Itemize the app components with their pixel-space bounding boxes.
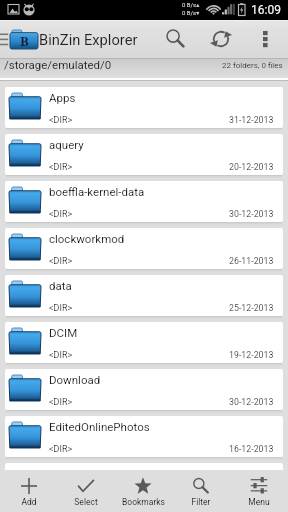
button[interactable]: Select bbox=[57, 470, 114, 512]
button[interactable]: Bookmarks bbox=[114, 470, 172, 512]
button[interactable]: Menu bbox=[230, 470, 288, 512]
staticText: <DIR> bbox=[49, 303, 73, 314]
staticText: 16-12-2013 bbox=[229, 444, 274, 454]
staticText: Bookmarks bbox=[122, 497, 165, 507]
button[interactable]: Refresh bbox=[200, 20, 241, 58]
staticText: aquery bbox=[49, 138, 84, 151]
button[interactable]: Download bbox=[5, 369, 283, 410]
staticText: 20-12-2013 bbox=[229, 162, 274, 172]
button[interactable]: DCIM bbox=[5, 322, 283, 363]
staticText: boeffla-kernel-data bbox=[49, 185, 145, 198]
button[interactable]: aquery bbox=[5, 134, 283, 175]
staticText: 31-12-2013 bbox=[229, 115, 274, 125]
button[interactable]: Menu bbox=[0, 20, 38, 58]
button[interactable]: boeffla-kernel-data bbox=[5, 181, 283, 222]
button[interactable]: EditedOnlinePhotos bbox=[5, 416, 283, 457]
staticText: 25-12-2013 bbox=[229, 303, 274, 313]
staticText: 22 folders, 0 files bbox=[222, 61, 283, 70]
staticText: Download bbox=[49, 373, 101, 386]
button[interactable]: data bbox=[5, 275, 283, 316]
staticText: Add bbox=[21, 497, 37, 507]
staticText: 0 B/s▾ bbox=[182, 9, 200, 16]
button[interactable]: More options bbox=[250, 20, 281, 58]
staticText: <DIR> bbox=[49, 350, 73, 361]
button[interactable]: Apps bbox=[5, 87, 283, 128]
staticText: B bbox=[20, 32, 29, 50]
button[interactable]: Filter bbox=[172, 470, 230, 512]
staticText: 30-12-2013 bbox=[229, 397, 274, 407]
staticText: BinZin Explorer bbox=[39, 31, 138, 48]
staticText: <DIR> bbox=[49, 397, 73, 408]
staticText: /storage/emulated/0 bbox=[4, 58, 112, 71]
staticText: EditedOnlinePhotos bbox=[49, 420, 150, 433]
staticText: 26-11-2013 bbox=[229, 256, 274, 266]
staticText: DCIM bbox=[49, 326, 78, 339]
staticText: data bbox=[49, 279, 72, 292]
staticText: 0 B/s▴ bbox=[182, 1, 200, 8]
button[interactable] bbox=[5, 463, 283, 504]
button[interactable]: Search bbox=[156, 20, 196, 58]
staticText: Menu bbox=[248, 497, 270, 507]
staticText: Select bbox=[74, 497, 98, 507]
staticText: <DIR> bbox=[49, 115, 73, 126]
staticText: 16:09 bbox=[251, 3, 281, 17]
staticText: 19-12-2013 bbox=[229, 350, 274, 360]
staticText: <DIR> bbox=[49, 162, 73, 173]
staticText: clockworkmod bbox=[49, 232, 125, 245]
staticText: <DIR> bbox=[49, 444, 73, 455]
staticText: <DIR> bbox=[49, 256, 73, 267]
staticText: Filter bbox=[191, 497, 211, 507]
staticText: 30-12-2013 bbox=[229, 209, 274, 219]
button[interactable]: /storage/emulated/0 bbox=[0, 59, 288, 78]
button[interactable]: clockworkmod bbox=[5, 228, 283, 269]
staticText: <DIR> bbox=[49, 209, 73, 220]
staticText: Apps bbox=[49, 91, 76, 104]
button[interactable]: Add bbox=[0, 470, 57, 512]
